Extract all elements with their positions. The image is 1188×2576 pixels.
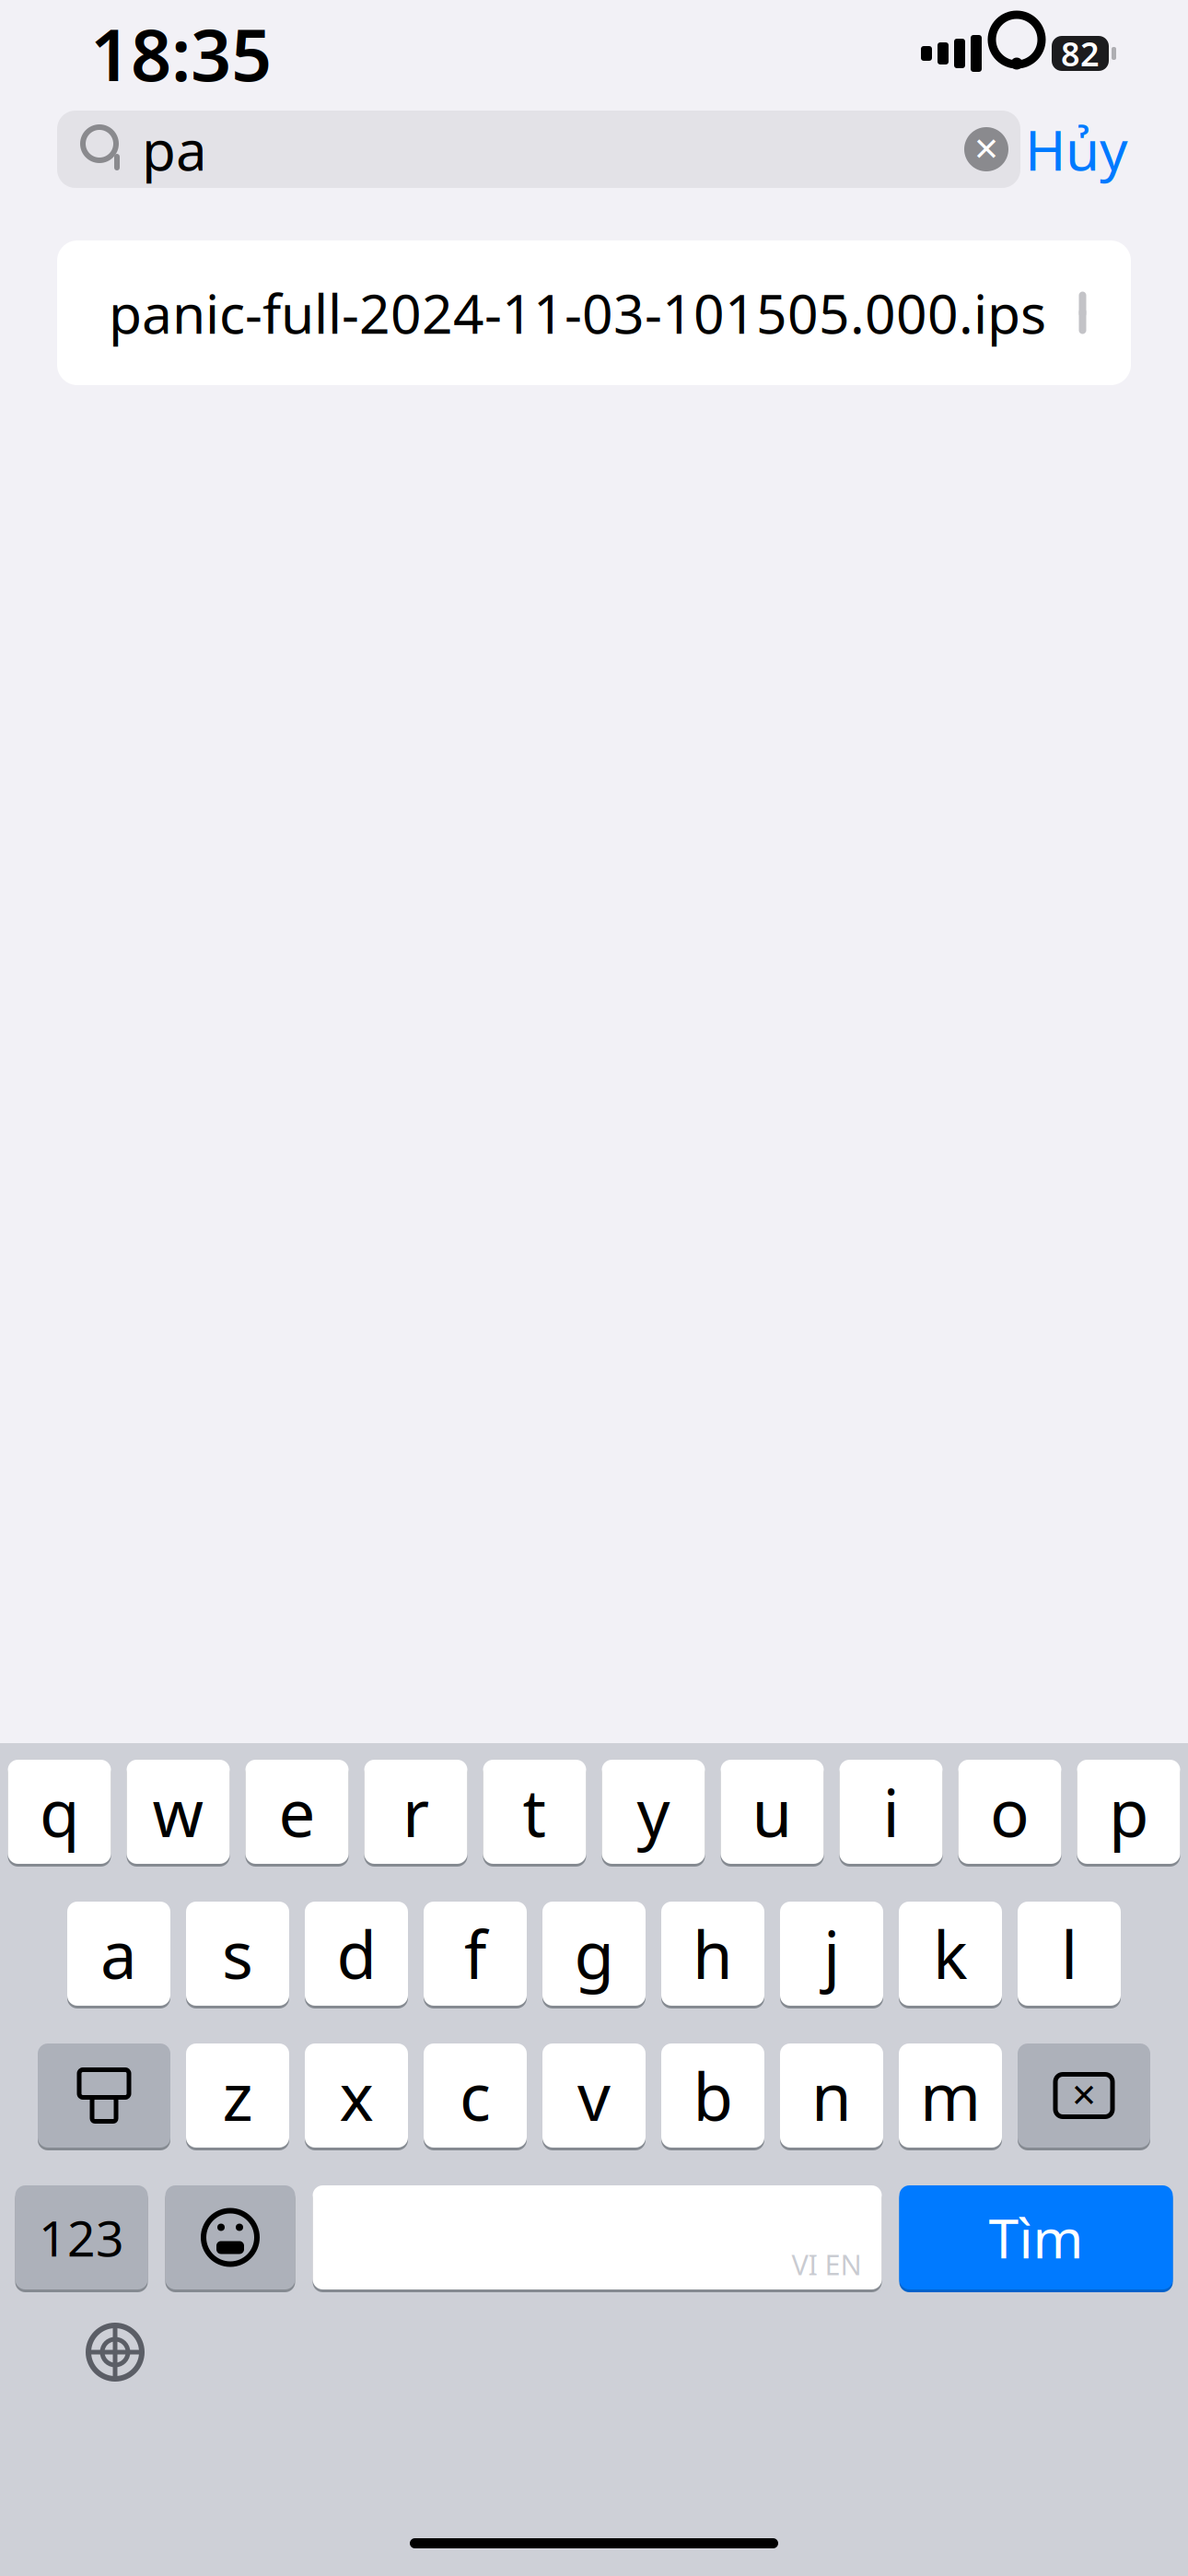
staticText: j [823, 1910, 840, 1997]
button[interactable]: c [424, 2041, 527, 2150]
staticText: pa [142, 113, 207, 186]
staticText: Hủy [1025, 113, 1128, 186]
staticText: c [460, 2052, 491, 2139]
button[interactable]: Numbers [15, 2183, 148, 2292]
staticText: p [1109, 1769, 1148, 1855]
staticText: y [637, 1769, 670, 1855]
button[interactable]: b [661, 2041, 764, 2150]
button[interactable]: Tìm [899, 2183, 1173, 2292]
button[interactable]: v [542, 2041, 646, 2150]
staticText: r [402, 1769, 429, 1855]
staticText: u [752, 1769, 792, 1855]
staticText: g [574, 1910, 614, 1997]
button[interactable]: Shift [38, 2041, 170, 2150]
button[interactable]: r [364, 1757, 467, 1867]
staticText: w [152, 1769, 204, 1855]
staticText: d [337, 1910, 376, 1997]
button[interactable]: x [305, 2041, 408, 2150]
staticText: s [222, 1910, 253, 1997]
staticText: h [693, 1910, 733, 1997]
staticText: v [577, 2052, 611, 2139]
staticText: f [464, 1910, 486, 1997]
staticText: z [222, 2052, 253, 2139]
button[interactable]: j [780, 1899, 883, 2008]
button[interactable]: h [661, 1899, 764, 2008]
button[interactable]: n [780, 2041, 883, 2150]
button[interactable]: f [424, 1899, 527, 2008]
button[interactable]: g [542, 1899, 646, 2008]
staticText: 82 [1061, 31, 1100, 75]
staticText: e [279, 1769, 315, 1855]
button[interactable]: w [127, 1757, 230, 1867]
button[interactable]: o [958, 1757, 1061, 1867]
button[interactable]: e [245, 1757, 349, 1867]
staticText: 123 [39, 2205, 124, 2270]
staticText: a [100, 1910, 137, 1997]
button[interactable]: l [1018, 1899, 1121, 2008]
staticText: ✕ [973, 131, 1000, 167]
button[interactable]: s [186, 1899, 289, 2008]
staticText: i [883, 1769, 899, 1855]
staticText: o [990, 1769, 1030, 1855]
staticText: q [40, 1769, 79, 1855]
staticText: k [933, 1910, 968, 1997]
button[interactable]: k [899, 1899, 1002, 2008]
button[interactable]: m [899, 2041, 1002, 2150]
button[interactable]: u [721, 1757, 824, 1867]
staticText: VI EN [792, 2245, 862, 2283]
button[interactable]: panic-full-2024-11-03-101505.000.ips [57, 240, 1131, 385]
button[interactable]: a [67, 1899, 170, 2008]
staticText: Tìm [989, 2201, 1083, 2273]
staticText: ✕ [1071, 2077, 1097, 2114]
button[interactable]: y [602, 1757, 705, 1867]
staticText: 18:35 [90, 6, 272, 101]
button[interactable]: d [305, 1899, 408, 2008]
staticText: x [339, 2052, 373, 2139]
staticText: m [920, 2052, 981, 2139]
button[interactable]: Delete [1018, 2041, 1150, 2150]
staticText: t [523, 1769, 547, 1855]
staticText: b [693, 2052, 733, 2139]
staticText: n [811, 2052, 852, 2139]
staticText: panic-full-2024-11-03-101505.000.ips [109, 277, 1046, 349]
button[interactable]: Emoji [165, 2183, 295, 2292]
button[interactable]: p [1077, 1757, 1180, 1867]
button[interactable]: Hủy [1020, 111, 1133, 188]
button[interactable]: Clear text [952, 111, 1020, 188]
staticText: l [1061, 1910, 1077, 1997]
button[interactable]: i [839, 1757, 943, 1867]
button[interactable]: z [186, 2041, 289, 2150]
button[interactable]: t [483, 1757, 586, 1867]
button[interactable]: q [8, 1757, 111, 1867]
button[interactable]: Space [313, 2183, 882, 2292]
button[interactable]: Next keyboard [64, 2301, 166, 2403]
